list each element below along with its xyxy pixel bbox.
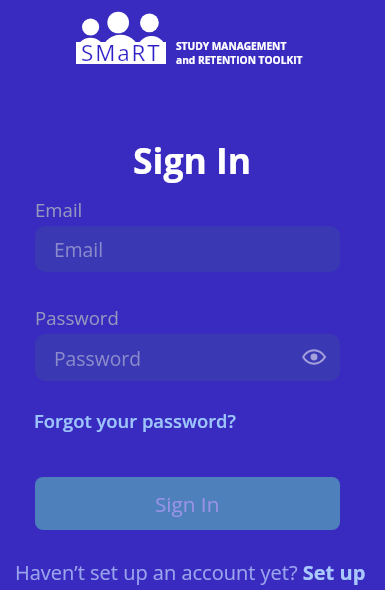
staticText: and RETENTION TOOLKIT bbox=[176, 53, 303, 67]
staticText: Haven’t set up an account yet? Set up bbox=[15, 559, 366, 586]
staticText: Email bbox=[35, 197, 83, 222]
staticText: Sign In bbox=[133, 136, 252, 184]
button[interactable]: Sign In bbox=[35, 477, 340, 530]
button[interactable]: Show password bbox=[293, 334, 340, 381]
button[interactable]: Email bbox=[35, 226, 340, 272]
button[interactable]: Forgot your password? bbox=[34, 408, 236, 433]
staticText: Forgot your password? bbox=[34, 408, 236, 433]
staticText: Email bbox=[54, 236, 104, 262]
button[interactable]: Haven’t set up an account yet? Set up bbox=[15, 559, 366, 586]
button[interactable]: Password bbox=[35, 334, 340, 381]
staticText: Password bbox=[35, 305, 119, 330]
staticText: Password bbox=[54, 345, 141, 371]
staticText: STUDY MANAGEMENT bbox=[176, 39, 287, 53]
staticText: SMaRT bbox=[81, 37, 162, 68]
staticText: Sign In bbox=[155, 490, 220, 518]
